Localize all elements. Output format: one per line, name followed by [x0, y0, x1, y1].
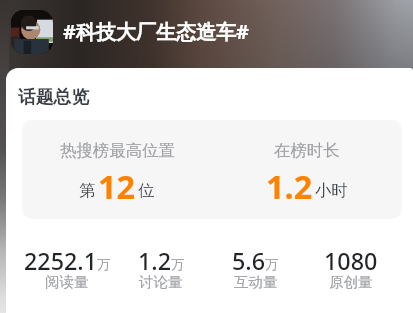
staticText: 第 — [79, 180, 96, 201]
staticText: 万 — [171, 256, 185, 273]
staticText: 在榜时长 — [274, 140, 340, 161]
button[interactable]: User avatar — [11, 10, 53, 54]
staticText: 阅读量 — [45, 273, 89, 291]
staticText: 12 — [98, 164, 136, 208]
staticText: 万 — [265, 256, 279, 273]
staticText: 1.2 — [266, 164, 313, 208]
staticText: 1080 — [324, 245, 378, 277]
staticText: 原创量 — [329, 273, 373, 291]
button[interactable]: 2252.1 — [20, 245, 114, 295]
button[interactable]: 热搜榜最高位置 — [22, 120, 212, 219]
button[interactable]: 5.6 — [208, 245, 303, 295]
staticText: #科技大厂生态造车# — [63, 18, 249, 45]
button[interactable]: 1080 — [303, 245, 398, 295]
staticText: 5.6 — [232, 245, 265, 277]
button[interactable]: 1.2 — [114, 245, 208, 295]
staticText: 互动量 — [234, 273, 278, 291]
staticText: 小时 — [315, 180, 348, 201]
staticText: 位 — [138, 180, 155, 201]
staticText: 话题总览 — [18, 86, 90, 108]
staticText: 热搜榜最高位置 — [60, 140, 175, 161]
staticText: 万 — [97, 256, 111, 273]
staticText: 2252.1 — [24, 245, 97, 277]
button[interactable]: 在榜时长 — [212, 120, 402, 219]
staticText: 讨论量 — [139, 273, 183, 291]
staticText: 1.2 — [138, 245, 171, 277]
